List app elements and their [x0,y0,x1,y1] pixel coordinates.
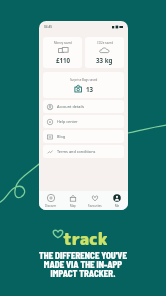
other: Money saved [58,47,69,54]
staticText: Surprise Bags saved [70,78,98,82]
staticText: Me [115,204,120,208]
staticText: Terms and conditions [57,149,96,154]
button[interactable]: Me [106,194,128,208]
staticText: 04:45 [44,25,53,29]
staticText: £110 [56,56,71,64]
staticText: THE DIFFERENCE YOU'VE MADE VIA THE IN-AP… [0,250,166,278]
button[interactable]: Money saved [43,37,82,68]
button[interactable]: Surprise Bags saved [43,72,124,98]
staticText: 33 kg [96,56,113,64]
button[interactable]: Account details [43,100,124,113]
button[interactable]: Blog [43,130,124,143]
staticText: Blog [57,134,66,139]
staticText: Account details [57,104,85,109]
other: CO2e saved [99,47,110,54]
other: Surprise bags saved [74,84,83,93]
staticText: 13 [86,85,94,93]
button[interactable]: Favourites [84,194,106,208]
button[interactable]: Map [62,194,84,208]
staticText: Map [70,204,76,208]
staticText: Discover [45,204,57,208]
staticText: Favourites [88,204,102,208]
staticText: CO2e saved [97,41,113,45]
button[interactable]: CO2e saved [85,37,124,68]
staticText: Money saved [54,41,72,45]
button[interactable]: Terms and conditions [43,145,124,158]
staticText: Help center [57,119,78,124]
staticText: track [63,228,108,250]
button[interactable]: Discover [39,194,62,208]
button[interactable]: Help center [43,115,124,128]
